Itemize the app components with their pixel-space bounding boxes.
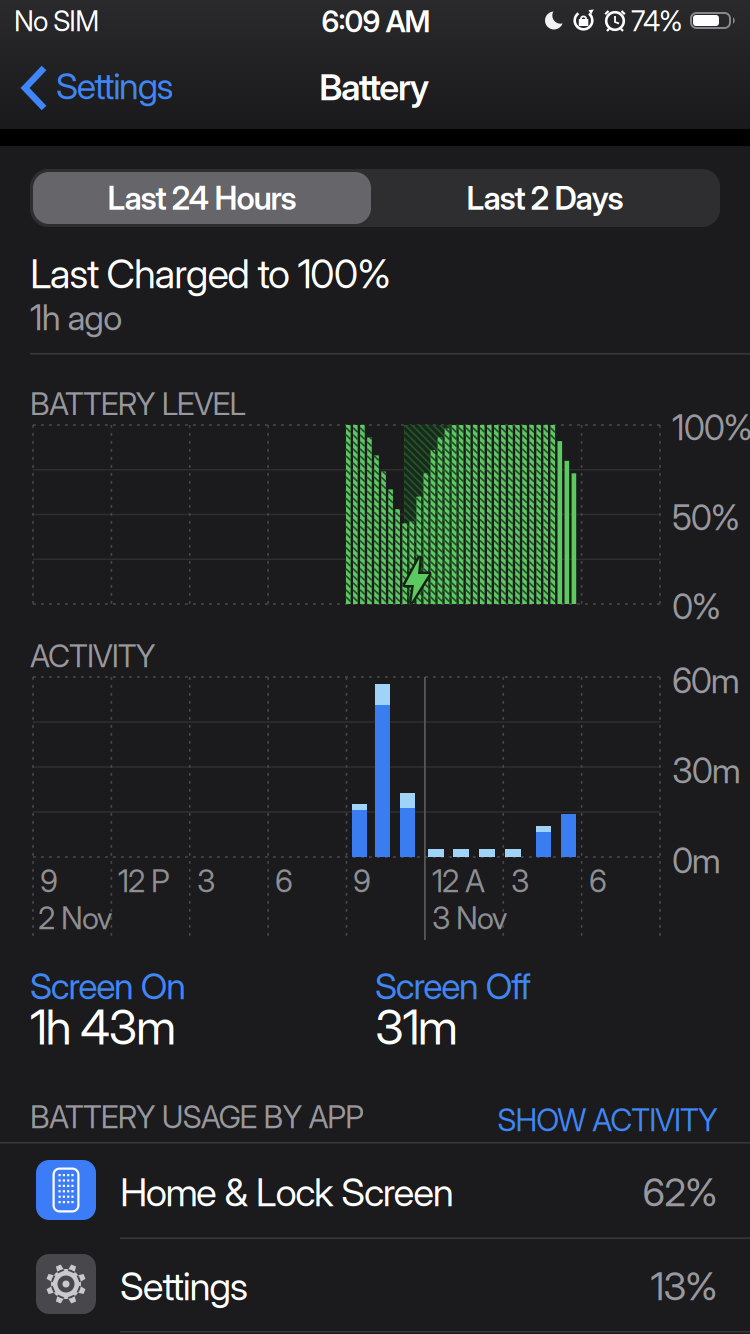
staticText: 6:09 AM [321,4,431,39]
staticText: 2 Nov [38,900,113,936]
staticText: 0m [672,840,721,881]
staticText: Screen Off [375,965,531,1007]
staticText: 9 [353,863,371,899]
staticText: Settings [56,65,173,107]
staticText: 31m [375,999,458,1055]
staticText: 3 Nov [432,900,508,936]
staticText: 9 [40,863,58,899]
staticText: 50% [672,497,740,538]
staticText: 13% [651,1263,718,1309]
staticText: Last Charged to 100% [30,250,391,297]
staticText: Last 2 Days [466,179,623,217]
button[interactable]: Last 2 Days [371,169,719,227]
button[interactable]: Settings [0,1238,750,1331]
staticText: 1h ago [30,297,122,338]
staticText: 62% [643,1169,718,1215]
staticText: 74% [631,4,683,37]
staticText: Settings [120,1263,248,1309]
staticText: BATTERY LEVEL [30,386,246,422]
staticText: 12 A [432,863,485,899]
staticText: 3 [197,863,215,899]
staticText: 30m [672,750,741,791]
button[interactable]: Back [16,60,196,116]
staticText: 100% [672,407,750,448]
staticText: 6 [589,863,607,899]
staticText: Screen On [30,965,186,1007]
staticText: 60m [672,660,740,701]
staticText: 3 [511,863,529,899]
button[interactable]: Home & Lock Screen [0,1144,750,1238]
staticText: BATTERY USAGE BY APP [30,1099,364,1135]
staticText: 1h 43m [30,999,176,1055]
staticText: 0% [672,586,721,627]
staticText: No SIM [14,4,99,37]
staticText: Last 24 Hours [107,179,296,217]
staticText: Home & Lock Screen [120,1169,454,1215]
staticText: SHOW ACTIVITY [497,1102,718,1138]
button[interactable]: Last 24 Hours [33,172,371,224]
staticText: Battery [319,66,429,108]
button[interactable]: SHOW ACTIVITY [438,1100,718,1140]
staticText: 6 [275,863,293,899]
staticText: ACTIVITY [30,638,156,674]
staticText: 12 P [118,863,170,899]
